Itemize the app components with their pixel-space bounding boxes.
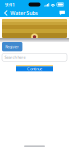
button[interactable]: Search here xyxy=(0,53,69,61)
button[interactable]: Continue xyxy=(16,65,53,71)
staticText: Search here xyxy=(4,55,25,60)
staticText: Water Subs xyxy=(10,9,38,17)
button[interactable]: Messages xyxy=(58,9,67,17)
staticText: Register xyxy=(5,44,19,49)
button[interactable]: Back xyxy=(2,9,10,17)
staticText: 9:41 xyxy=(5,1,15,8)
staticText: Continue xyxy=(27,66,42,71)
button[interactable]: Register xyxy=(2,42,22,51)
